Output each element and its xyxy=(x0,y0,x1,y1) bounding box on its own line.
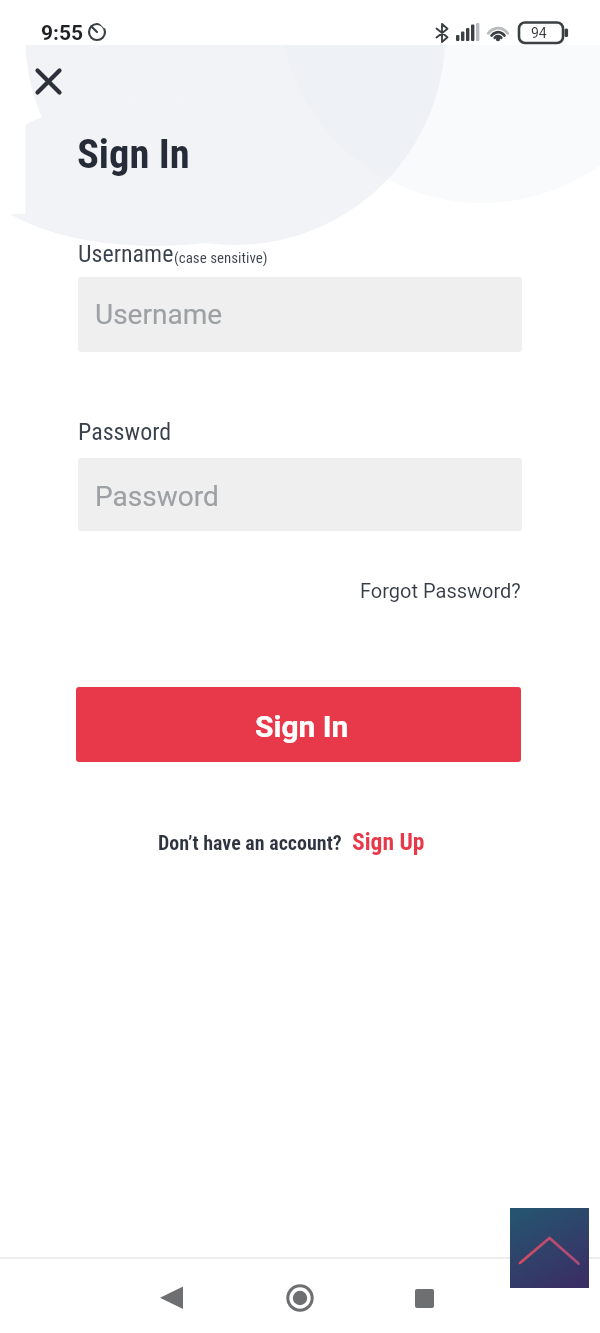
staticText: (case sensitive) xyxy=(174,249,268,267)
button[interactable] xyxy=(400,1274,448,1322)
staticText: 94 xyxy=(531,25,547,41)
staticText: Username xyxy=(78,240,174,268)
staticText: Don’t have an account? xyxy=(158,831,342,854)
staticText: 9:55 xyxy=(41,21,84,46)
staticText: Username xyxy=(95,298,223,331)
button[interactable] xyxy=(276,1274,324,1322)
staticText: Password xyxy=(78,418,172,446)
button[interactable] xyxy=(510,1208,589,1288)
button[interactable]: Password xyxy=(78,458,522,531)
button[interactable]: Sign In xyxy=(76,687,521,762)
button[interactable] xyxy=(28,61,68,101)
staticText: Sign In xyxy=(77,130,190,177)
button[interactable] xyxy=(148,1274,196,1322)
staticText: Sign In xyxy=(255,709,349,744)
button[interactable]: Forgot Password? xyxy=(360,579,521,602)
button[interactable]: Username xyxy=(78,277,522,352)
staticText: Password xyxy=(95,480,219,513)
button[interactable]: Sign Up xyxy=(352,828,425,856)
